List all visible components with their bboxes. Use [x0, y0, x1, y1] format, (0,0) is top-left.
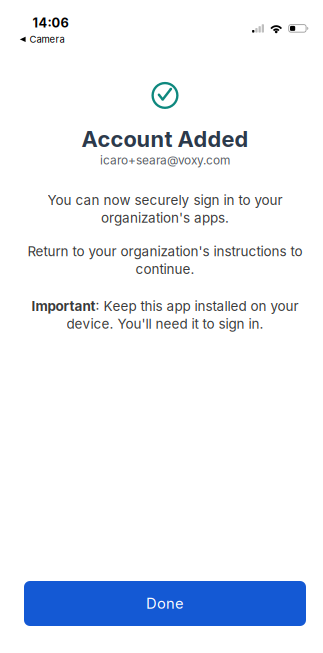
staticText: Account Added: [81, 126, 248, 152]
staticText: Return to your organization's instructio…: [27, 243, 302, 259]
staticText: Important: [31, 298, 95, 314]
staticText: organization's apps.: [101, 210, 229, 226]
staticText: : Keep this app installed on your: [95, 298, 298, 314]
button[interactable]: Done: [24, 581, 306, 626]
staticText: icaro+seara@voxy.com: [100, 153, 230, 167]
staticText: device. You'll need it to sign in.: [66, 316, 263, 332]
staticText: continue.: [135, 261, 194, 277]
staticText: Camera: [29, 34, 64, 45]
staticText: You can now securely sign in to your: [47, 192, 282, 208]
staticText: 14:06: [32, 15, 68, 30]
staticText: Done: [146, 595, 184, 612]
